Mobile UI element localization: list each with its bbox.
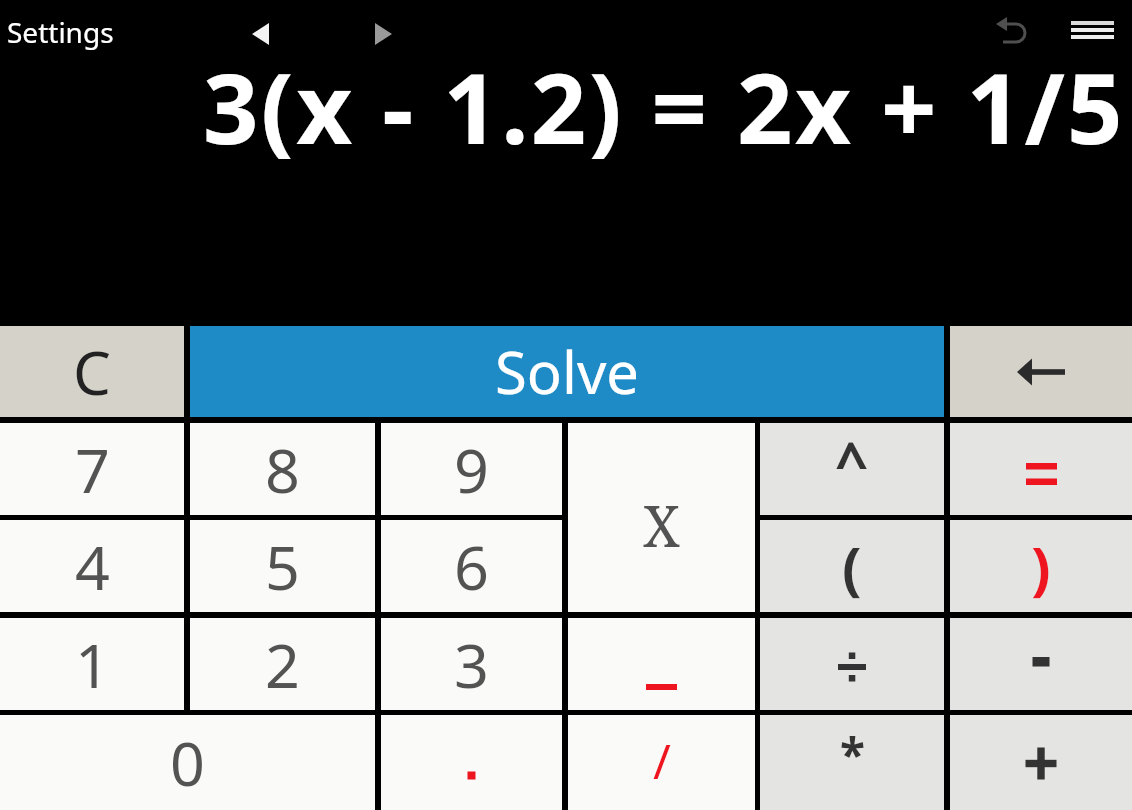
staticText: X [643,487,680,563]
staticText: * [840,723,865,786]
staticText: ^ [835,422,869,501]
staticText: 5 [265,525,300,608]
button[interactable]: ) [950,520,1132,612]
button[interactable]: ^ [760,423,944,515]
staticText: ( [842,527,862,606]
button[interactable] [950,423,1132,515]
staticText: 0 [170,721,205,804]
button[interactable]: 9 [381,423,562,515]
staticText: 1 [75,623,110,706]
button[interactable]: / [568,715,755,810]
staticText: 4 [75,525,110,608]
button[interactable]: 3 [381,618,562,710]
button[interactable] [381,715,562,810]
button[interactable]: 4 [0,520,184,612]
staticText: ) [1031,527,1051,606]
button[interactable]: X [568,423,755,612]
staticText: Settings [7,13,114,51]
staticText: Solve [495,332,640,411]
button[interactable]: 8 [190,423,375,515]
staticText: C [73,331,111,413]
button[interactable]: 0 [0,715,375,810]
button[interactable]: Settings [0,8,124,59]
button[interactable]: C [0,326,184,417]
button[interactable] [568,618,755,710]
button[interactable] [950,715,1132,810]
button[interactable]: ( [760,520,944,612]
staticText: 3 [454,623,489,706]
staticText: 9 [454,428,489,511]
button[interactable]: 2 [190,618,375,710]
staticText: 7 [75,428,110,511]
button[interactable] [365,15,407,53]
button[interactable]: * [760,715,944,810]
staticText: / [653,728,671,793]
staticText: 3(x - 1.2) = 2x + 1/5 [0,40,1125,172]
button[interactable] [950,618,1132,710]
button[interactable]: Solve [190,326,944,417]
button[interactable] [1064,12,1122,48]
button[interactable] [990,10,1036,54]
staticText: 6 [454,525,489,608]
button[interactable] [240,15,282,53]
staticText: 8 [265,428,300,511]
button[interactable] [760,618,944,710]
button[interactable]: 5 [190,520,375,612]
button[interactable]: 1 [0,618,184,710]
staticText: 2 [265,623,300,706]
button[interactable]: 6 [381,520,562,612]
button[interactable]: 7 [0,423,184,515]
button[interactable] [950,326,1132,417]
